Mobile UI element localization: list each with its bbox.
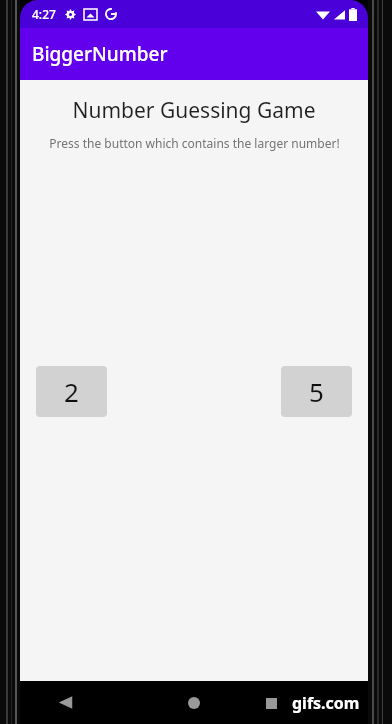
button[interactable]: 2 <box>36 366 107 417</box>
staticText: 5 <box>309 374 324 409</box>
staticText: 4:27 <box>32 6 56 22</box>
button[interactable]: 5 <box>281 366 352 417</box>
button[interactable]: Back <box>20 681 110 724</box>
staticText: BiggerNumber <box>32 41 168 67</box>
staticText: gifs.com <box>292 692 360 714</box>
staticText: 2 <box>64 374 79 409</box>
button[interactable]: Home <box>154 681 234 724</box>
button[interactable]: Recent apps <box>254 686 288 720</box>
staticText: Number Guessing Game <box>72 96 316 125</box>
staticText: Press the button which contains the larg… <box>49 135 340 151</box>
